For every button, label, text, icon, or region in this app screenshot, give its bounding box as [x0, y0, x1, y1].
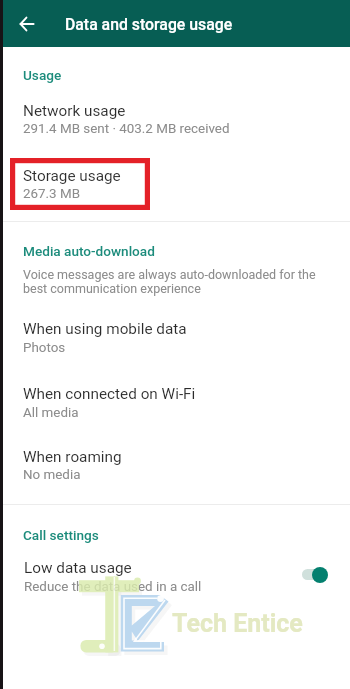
staticText: 291.4 MB sent · 403.2 MB received	[23, 121, 230, 137]
staticText: Reduce the data used in a call	[24, 579, 202, 595]
staticText: Data and storage usage	[65, 15, 233, 34]
button[interactable]	[0, 377, 350, 426]
button[interactable]	[0, 159, 350, 207]
button[interactable]	[0, 440, 350, 489]
staticText: Low data usage	[24, 559, 132, 577]
staticText: Storage usage	[23, 167, 121, 185]
staticText: Photos	[23, 340, 66, 356]
staticText: Call settings	[23, 527, 99, 543]
staticText: Tech Entice	[172, 609, 303, 638]
staticText: When roaming	[23, 448, 122, 466]
button[interactable]	[0, 312, 350, 361]
staticText: 267.3 MB	[23, 186, 80, 202]
staticText: Tech Entice	[172, 609, 303, 638]
staticText: All media	[23, 405, 79, 421]
staticText: Media auto-download	[23, 243, 155, 259]
button[interactable]	[0, 551, 350, 599]
button[interactable]	[0, 94, 350, 142]
staticText: Usage	[23, 67, 62, 83]
staticText: When using mobile data	[23, 320, 187, 338]
staticText: Voice messages are always auto-downloade…	[23, 267, 323, 296]
staticText: When connected on Wi-Fi	[23, 385, 196, 403]
staticText: Network usage	[23, 102, 126, 120]
staticText: No media	[23, 467, 81, 483]
button[interactable]: Back	[3, 0, 51, 48]
